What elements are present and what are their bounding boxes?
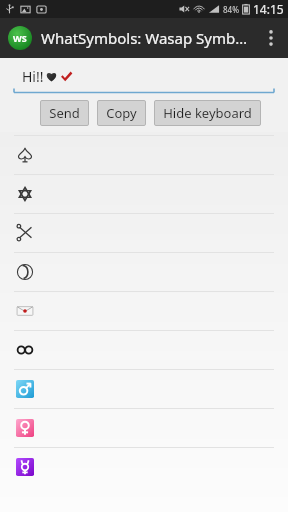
button[interactable]: Symbol scissors (0, 213, 288, 252)
staticText: Copy (106, 104, 137, 122)
staticText: WhatSymbols: Wasap Symb… (41, 28, 248, 48)
button[interactable]: Symbol star6 (0, 174, 288, 213)
button[interactable]: Symbol female (0, 408, 288, 447)
button[interactable]: Hide keyboard (154, 100, 261, 126)
staticText: WS (13, 32, 27, 44)
staticText: 84% (223, 4, 239, 15)
button[interactable]: Symbol male (0, 369, 288, 408)
button[interactable]: Symbol envelope (0, 291, 288, 330)
button[interactable]: Symbol trans (0, 447, 288, 486)
staticText: 14:15 (253, 1, 284, 17)
button[interactable]: Symbol infinity (0, 330, 288, 369)
staticText: Hi!! (22, 67, 44, 86)
button[interactable]: Send (40, 100, 89, 126)
button[interactable]: More options (254, 18, 288, 58)
button[interactable]: Copy (97, 100, 146, 126)
staticText: Send (49, 104, 80, 122)
button[interactable]: Symbol spade (0, 135, 288, 174)
button[interactable]: Symbol moon (0, 252, 288, 291)
staticText: Hide keyboard (163, 104, 252, 122)
button[interactable]: Hi!! (0, 58, 288, 94)
